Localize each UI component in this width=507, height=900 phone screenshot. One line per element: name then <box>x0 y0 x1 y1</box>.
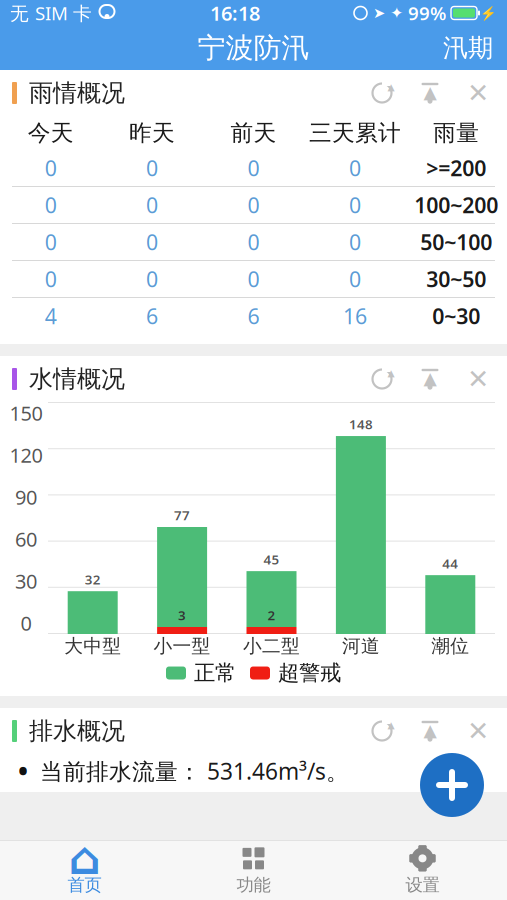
staticText: 0 <box>45 265 57 293</box>
staticText: ⌂ <box>68 833 100 884</box>
staticText: 首页 <box>67 874 101 896</box>
staticText: 99% <box>408 1 446 25</box>
staticText: 无 SIM 卡 <box>10 1 92 25</box>
staticText: 0 <box>146 228 158 256</box>
button[interactable]: 收起 <box>417 80 443 106</box>
staticText: 100~200 <box>414 191 498 219</box>
button[interactable]: 刷新 <box>369 718 395 744</box>
button[interactable]: 汛期 <box>429 24 507 71</box>
staticText: ➤ <box>373 5 385 21</box>
staticText: 当前排水流量： 531.46m³/s。 <box>40 756 349 786</box>
staticText: ▲ <box>387 368 394 378</box>
staticText: ▲ <box>387 720 394 730</box>
staticText: 水情概况 <box>29 364 125 394</box>
staticText: 河道 <box>342 634 380 657</box>
staticText: 0 <box>247 228 259 256</box>
staticText: 60 <box>15 526 37 552</box>
staticText: 2 <box>267 606 275 624</box>
staticText: 0~30 <box>432 302 480 330</box>
staticText: ▲ <box>423 82 436 102</box>
staticText: 6 <box>146 302 158 330</box>
staticText: 150 <box>9 400 42 426</box>
staticText: 30~50 <box>426 265 486 293</box>
staticText: ▲ <box>423 720 436 740</box>
staticText: 0 <box>20 610 31 636</box>
staticText: ✕ <box>467 716 489 746</box>
staticText: 30 <box>15 568 37 594</box>
staticText: 功能 <box>236 874 270 896</box>
staticText: 0 <box>45 154 57 182</box>
staticText: >=200 <box>426 154 486 182</box>
staticText: 6 <box>247 302 259 330</box>
staticText: 0 <box>349 191 361 219</box>
staticText: 0 <box>45 228 57 256</box>
staticText: 0 <box>349 154 361 182</box>
staticText: 90 <box>15 484 37 510</box>
staticText: 设置 <box>405 874 439 896</box>
button[interactable]: 关闭 <box>465 366 491 392</box>
staticText: 0 <box>45 191 57 219</box>
staticText: 小二型 <box>243 634 300 657</box>
staticText: 120 <box>9 442 42 468</box>
staticText: ▲ <box>387 82 394 92</box>
button[interactable]: ⌂ <box>0 840 169 900</box>
staticText: 0 <box>146 265 158 293</box>
button[interactable]: 功能 <box>169 840 338 900</box>
staticText: 超警戒 <box>278 660 341 686</box>
staticText: 3 <box>178 606 186 624</box>
staticText: 昨天 <box>129 119 175 147</box>
staticText: 44 <box>442 554 458 572</box>
staticText: 4 <box>45 302 57 330</box>
staticText: 77 <box>174 506 190 524</box>
staticText: 45 <box>263 550 279 568</box>
staticText: 16:18 <box>210 0 260 26</box>
staticText: 0 <box>247 154 259 182</box>
staticText: 雨量 <box>433 119 479 147</box>
staticText: 16 <box>343 302 367 330</box>
staticText: ✕ <box>467 364 489 394</box>
button[interactable]: 设置 <box>338 840 507 900</box>
staticText: 小一型 <box>154 634 211 657</box>
button[interactable]: 刷新 <box>369 366 395 392</box>
staticText: 大中型 <box>64 634 121 657</box>
button[interactable]: 添加 <box>420 753 484 817</box>
staticText: 50~100 <box>420 228 492 256</box>
button[interactable]: 刷新 <box>369 80 395 106</box>
staticText: 雨情概况 <box>29 78 125 108</box>
staticText: • <box>18 753 28 789</box>
button[interactable]: 关闭 <box>465 718 491 744</box>
staticText: 汛期 <box>443 32 493 63</box>
button[interactable]: 收起 <box>417 718 443 744</box>
staticText: 0 <box>349 228 361 256</box>
button[interactable]: 关闭 <box>465 80 491 106</box>
staticText: 32 <box>85 570 101 588</box>
staticText: 0 <box>247 265 259 293</box>
staticText: ✕ <box>467 78 489 108</box>
staticText: 三天累计 <box>309 119 401 147</box>
staticText: 正常 <box>194 660 236 686</box>
staticText: 0 <box>146 154 158 182</box>
staticText: 前天 <box>230 119 276 147</box>
staticText: 今天 <box>28 119 74 147</box>
staticText: 148 <box>349 415 373 433</box>
button[interactable]: 收起 <box>417 366 443 392</box>
staticText: 0 <box>247 191 259 219</box>
staticText: 0 <box>349 265 361 293</box>
staticText: ⚡ <box>480 5 497 21</box>
staticText: 宁波防汛 <box>197 31 309 65</box>
staticText: 排水概况 <box>29 716 125 746</box>
staticText: 潮位 <box>431 634 469 657</box>
staticText: ✦ <box>390 4 403 22</box>
staticText: 0 <box>146 191 158 219</box>
staticText: ▲ <box>423 368 436 388</box>
